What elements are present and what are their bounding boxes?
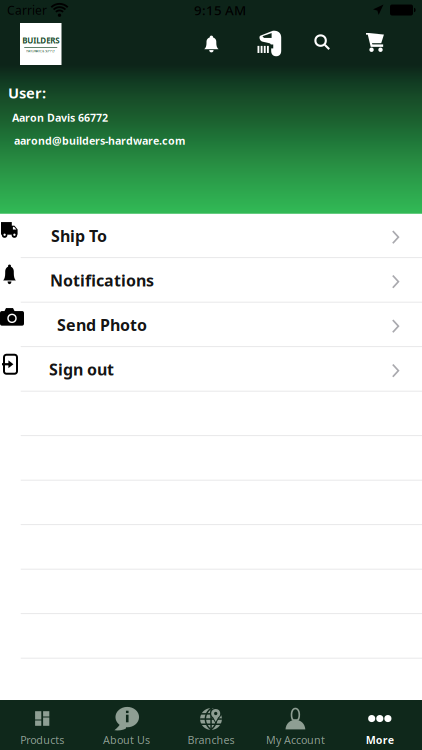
- staticText: User:: [8, 83, 46, 102]
- button[interactable]: About Us: [84, 700, 169, 750]
- button[interactable]: More: [338, 700, 422, 750]
- staticText: 9:15 AM: [194, 1, 246, 19]
- button[interactable]: Search: [306, 26, 339, 60]
- button[interactable]: Send Photo: [0, 303, 422, 347]
- button[interactable]: Shopping cart: [357, 24, 393, 61]
- button[interactable]: Branches: [169, 700, 253, 750]
- staticText: Sign out: [49, 359, 114, 380]
- staticText: Aaron Davis 66772: [12, 110, 108, 125]
- button[interactable]: My Account: [253, 700, 338, 750]
- button[interactable]: Notifications: [0, 258, 422, 303]
- staticText: Branches: [187, 733, 234, 747]
- staticText: About Us: [103, 733, 150, 747]
- button[interactable]: Ship To: [0, 214, 422, 258]
- button[interactable]: Notifications: [195, 26, 228, 62]
- staticText: Notifications: [50, 270, 154, 291]
- staticText: Ship To: [51, 225, 107, 246]
- staticText: Products: [20, 733, 64, 747]
- staticText: Carrier: [7, 2, 47, 18]
- staticText: HARDWARE & SUPPLY: [26, 49, 55, 53]
- staticText: More: [366, 733, 394, 747]
- button[interactable]: Sign out: [0, 347, 422, 392]
- button[interactable]: Scan barcode: [250, 22, 290, 63]
- staticText: BUILDERS: [22, 35, 59, 46]
- staticText: My Account: [266, 733, 325, 747]
- staticText: Send Photo: [57, 314, 147, 335]
- staticText: aarond@builders-hardware.com: [14, 134, 185, 148]
- button[interactable]: Products: [0, 700, 84, 750]
